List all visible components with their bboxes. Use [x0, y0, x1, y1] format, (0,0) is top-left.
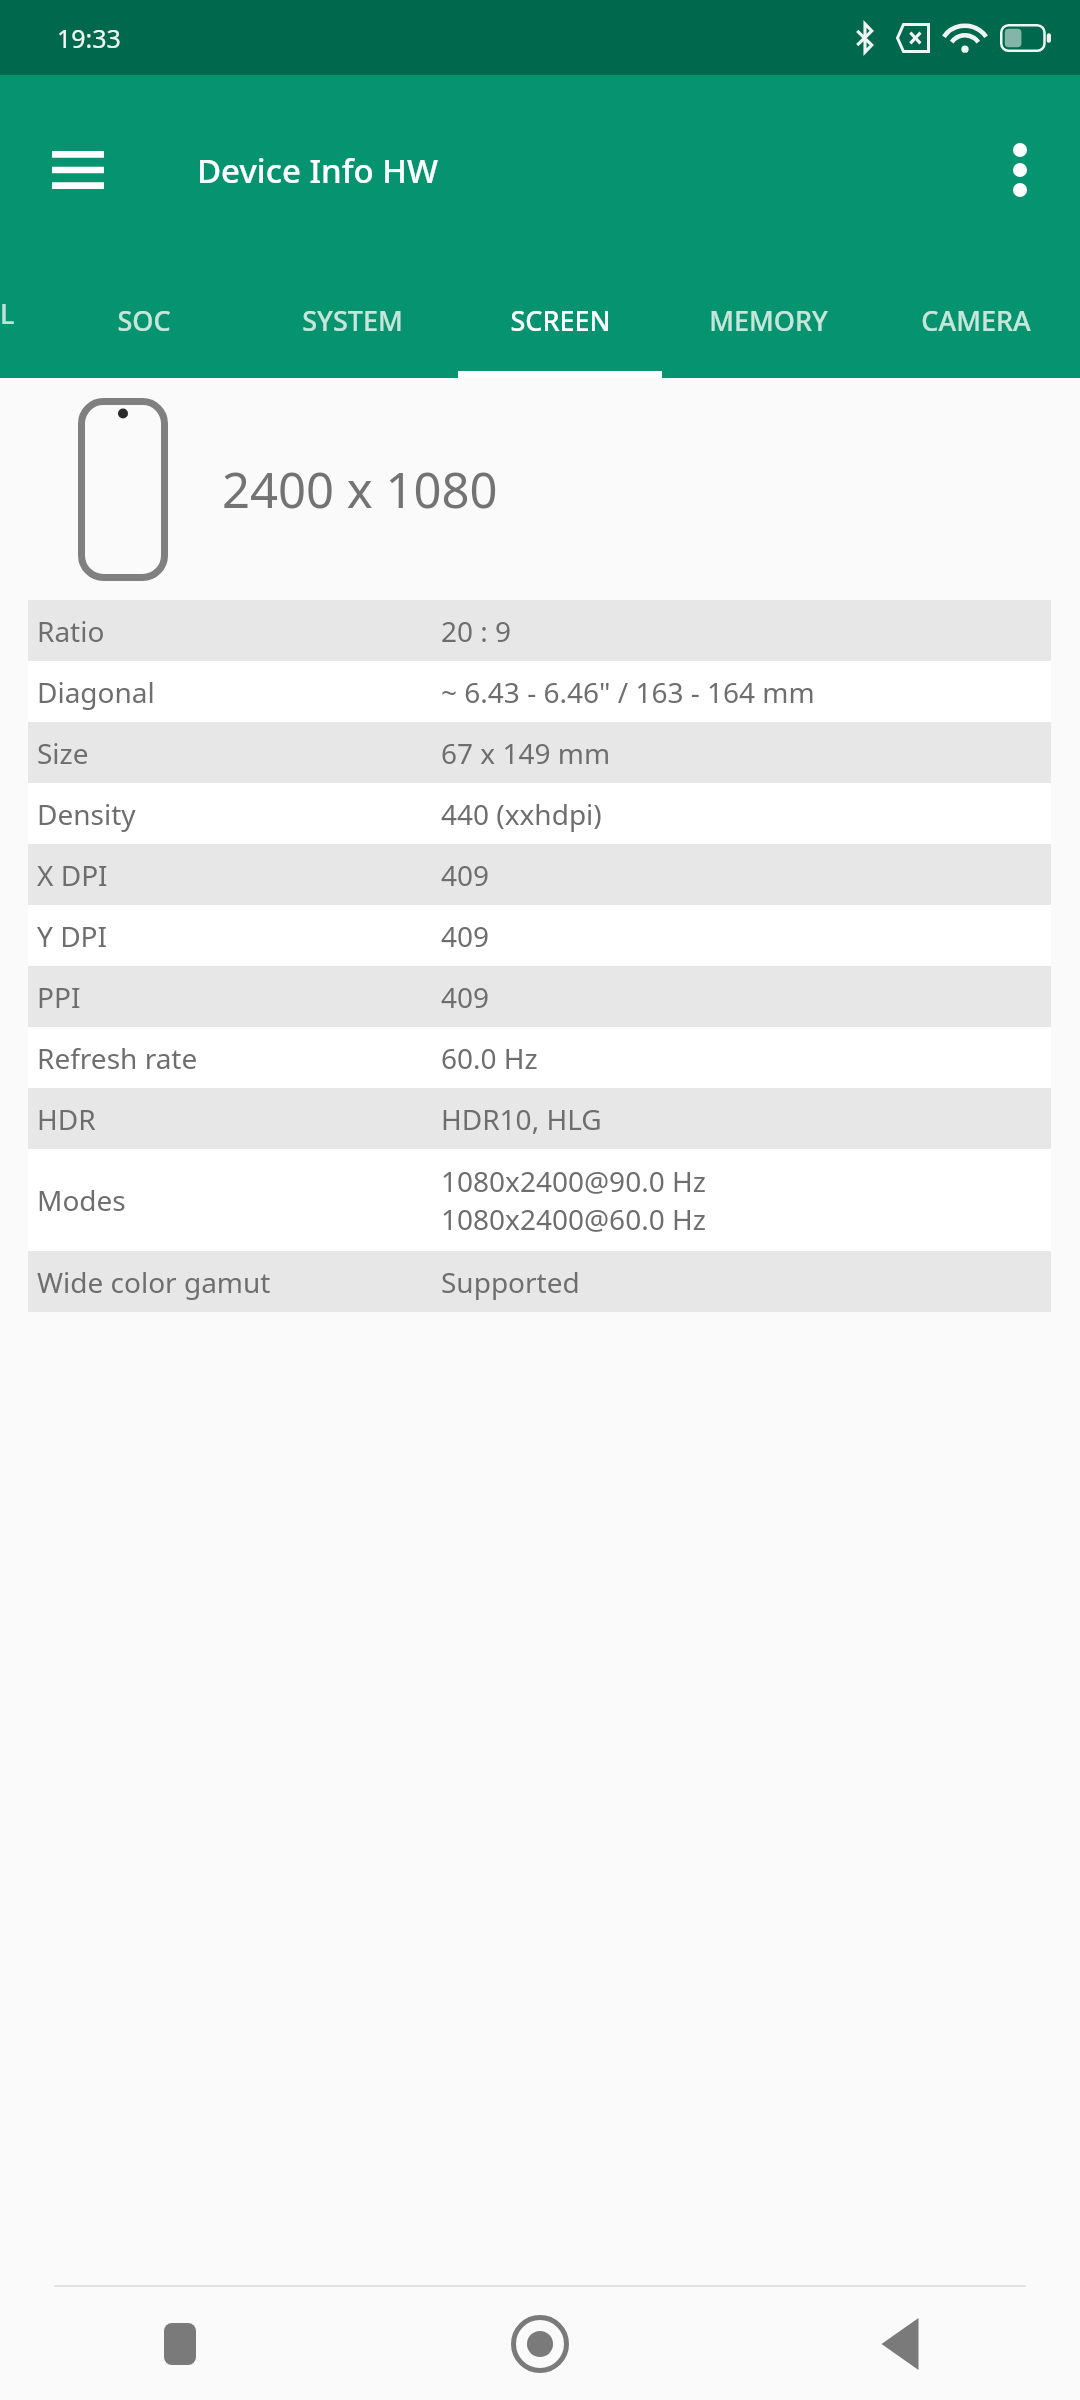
button[interactable]: Wide color gamut — [28, 1251, 1051, 1312]
staticText: Device Info HW — [197, 148, 439, 193]
button[interactable]: MEMORY — [664, 265, 872, 378]
staticText: 67 x 149 mm — [441, 734, 611, 772]
staticText: SCREEN — [510, 302, 611, 339]
button[interactable]: SCREEN — [456, 265, 664, 378]
staticText: Wide color gamut — [37, 1263, 441, 1301]
staticText: CAMERA — [921, 302, 1031, 339]
staticText: MEMORY — [709, 302, 828, 339]
button[interactable]: Diagonal — [28, 661, 1051, 722]
button[interactable]: Refresh rate — [28, 1027, 1051, 1088]
staticText: Y DPI — [37, 917, 441, 955]
button[interactable]: Home — [360, 2287, 720, 2400]
button[interactable]: Y DPI — [28, 905, 1051, 966]
staticText: PPI — [37, 978, 441, 1016]
staticText: 20 : 9 — [441, 612, 512, 650]
button[interactable]: Density — [28, 783, 1051, 844]
staticText: 19:33 — [57, 21, 121, 55]
staticText: SYSTEM — [302, 302, 403, 339]
button[interactable]: Back — [720, 2287, 1080, 2400]
staticText: Refresh rate — [37, 1039, 441, 1077]
staticText: 60.0 Hz — [441, 1039, 538, 1077]
staticText: 1080x2400@90.0 Hz — [441, 1162, 706, 1200]
staticText: HDR — [37, 1100, 441, 1138]
button[interactable]: CAMERA — [872, 265, 1080, 378]
staticText: Diagonal — [37, 673, 441, 711]
button[interactable]: HDR — [28, 1088, 1051, 1149]
button[interactable]: More options — [978, 128, 1062, 212]
staticText: 440 (xxhdpi) — [441, 795, 602, 833]
button[interactable]: X DPI — [28, 844, 1051, 905]
button[interactable]: Size — [28, 722, 1051, 783]
staticText: 2400 x 1080 — [222, 456, 498, 523]
staticText: Density — [37, 795, 441, 833]
staticText: SOC — [117, 302, 171, 339]
staticText: Modes — [37, 1181, 441, 1219]
staticText: HDR10, HLG — [441, 1100, 602, 1138]
staticText: Size — [37, 734, 441, 772]
button[interactable]: Ratio — [28, 600, 1051, 661]
staticText: ~ 6.43 - 6.46" / 163 - 164 mm — [441, 673, 815, 711]
staticText: X DPI — [37, 856, 441, 894]
staticText: 409 — [441, 917, 490, 955]
staticText: Supported — [441, 1263, 580, 1301]
button[interactable]: PPI — [28, 966, 1051, 1027]
button[interactable]: Modes — [28, 1149, 1051, 1251]
button[interactable]: Recent apps — [0, 2287, 360, 2400]
staticText: 409 — [441, 856, 490, 894]
staticText: Ratio — [37, 612, 441, 650]
button[interactable]: SYSTEM — [248, 265, 456, 378]
button[interactable]: SOC — [40, 265, 248, 378]
staticText: 409 — [441, 978, 490, 1016]
staticText: 1080x2400@60.0 Hz — [441, 1200, 706, 1238]
staticText: L — [0, 295, 15, 332]
button[interactable]: Open navigation drawer — [36, 128, 120, 212]
